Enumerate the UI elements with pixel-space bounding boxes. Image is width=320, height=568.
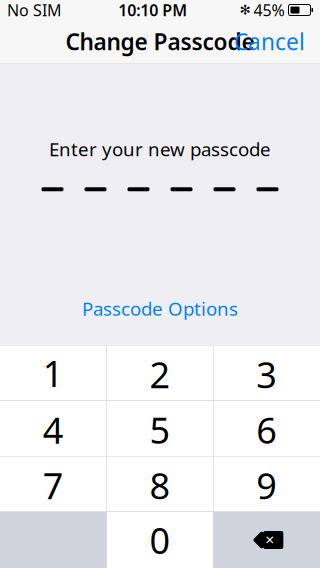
staticText: Change Passcode bbox=[65, 26, 254, 56]
staticText: 7 bbox=[43, 461, 64, 509]
button[interactable]: 5 bbox=[107, 401, 213, 456]
button[interactable]: 3 bbox=[214, 345, 320, 400]
staticText: Cancel bbox=[234, 26, 305, 56]
staticText: MNO bbox=[252, 455, 282, 471]
staticText: 5 bbox=[149, 406, 170, 454]
staticText: 10:10 PM bbox=[118, 0, 187, 21]
staticText: 9 bbox=[256, 461, 277, 509]
staticText: 6 bbox=[256, 406, 277, 454]
staticText: No SIM bbox=[7, 0, 62, 21]
staticText: ✕ bbox=[265, 533, 275, 547]
button[interactable]: 4 bbox=[0, 401, 106, 456]
button[interactable]: Delete bbox=[214, 512, 320, 568]
staticText: 0 bbox=[149, 516, 170, 564]
staticText: 45% bbox=[253, 0, 284, 21]
staticText: 2 bbox=[149, 350, 170, 398]
staticText: 1 bbox=[43, 349, 64, 397]
staticText: Enter your new passcode bbox=[49, 136, 271, 161]
button[interactable]: 6 bbox=[214, 401, 320, 456]
button[interactable]: 2 bbox=[107, 345, 213, 400]
staticText: WXYZ bbox=[250, 510, 283, 526]
button[interactable]: 0 bbox=[107, 512, 213, 568]
staticText: ✻ bbox=[239, 2, 250, 17]
staticText: JKL bbox=[150, 455, 169, 471]
button[interactable]: Passcode Options bbox=[68, 290, 252, 327]
button[interactable]: 9 bbox=[214, 456, 320, 511]
button[interactable]: 1 bbox=[0, 345, 106, 400]
staticText: 8 bbox=[149, 461, 170, 509]
staticText: 4 bbox=[43, 406, 64, 454]
staticText: Passcode Options bbox=[82, 296, 238, 321]
button[interactable]: 8 bbox=[107, 456, 213, 511]
staticText: TUV bbox=[148, 510, 172, 526]
staticText: DEF bbox=[256, 399, 278, 415]
staticText: GHI bbox=[42, 455, 64, 471]
staticText: 3 bbox=[256, 350, 277, 398]
button[interactable]: Cancel bbox=[224, 20, 315, 62]
staticText: ABC bbox=[148, 399, 172, 415]
button[interactable]: 7 bbox=[0, 456, 106, 511]
staticText: PQRS bbox=[38, 510, 69, 526]
